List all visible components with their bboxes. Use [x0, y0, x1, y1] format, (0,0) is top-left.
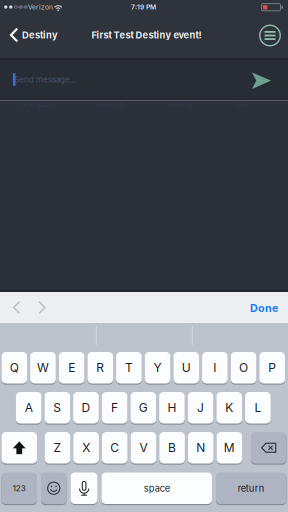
staticText: U [182, 361, 191, 375]
staticText: return [238, 483, 265, 494]
button[interactable]: Q [1, 352, 27, 383]
button[interactable]: A [16, 392, 41, 423]
button[interactable]: J [188, 392, 213, 423]
button[interactable]: return [216, 472, 286, 504]
staticText: Q [10, 361, 19, 375]
button[interactable]: W [30, 352, 56, 383]
button[interactable]: R [87, 352, 113, 383]
staticText: M [224, 441, 235, 455]
button[interactable]: Delete [251, 432, 286, 463]
staticText: 7:19 PM [131, 3, 156, 11]
button[interactable]: B [159, 432, 185, 463]
button[interactable]: H [159, 392, 185, 423]
staticText: Y [154, 361, 162, 375]
button[interactable]: 123 [1, 472, 37, 504]
staticText: W [37, 361, 49, 375]
button[interactable]: S [44, 392, 70, 423]
staticText: First Test Destiny event! [91, 29, 201, 40]
button[interactable]: C [102, 432, 127, 463]
staticText: C [110, 441, 119, 455]
button[interactable]: M [216, 432, 242, 463]
button[interactable]: Back [10, 20, 58, 50]
button[interactable]: N [188, 432, 213, 463]
staticText: I [213, 361, 216, 375]
button[interactable]: G [130, 392, 156, 423]
staticText: PS4 [237, 101, 249, 108]
button[interactable]: Dictate [70, 472, 97, 504]
button[interactable]: Emoji [41, 472, 66, 504]
staticText: 123 [13, 483, 26, 493]
staticText: Send message... [14, 75, 76, 84]
button[interactable]: Y [145, 352, 170, 383]
staticText: D [81, 401, 90, 415]
button[interactable]: Send [251, 72, 271, 90]
button[interactable]: K [216, 392, 242, 423]
staticText: Done [250, 302, 278, 314]
button[interactable]: space [101, 472, 212, 504]
staticText: N [196, 441, 205, 455]
staticText: V [139, 441, 147, 455]
button[interactable]: L [245, 392, 271, 423]
button[interactable]: Menu [258, 23, 282, 47]
staticText: B [168, 441, 176, 455]
button[interactable]: D [73, 392, 99, 423]
button[interactable]: Previous [13, 301, 21, 314]
staticText: L [254, 401, 261, 415]
staticText: S [53, 401, 61, 415]
button[interactable]: F [102, 392, 127, 423]
staticText: P [268, 361, 276, 375]
button[interactable]: U [173, 352, 199, 383]
button[interactable]: Z [45, 432, 70, 463]
staticText: R [96, 361, 104, 375]
staticText: E [68, 361, 75, 375]
staticText: space [144, 483, 170, 494]
staticText: O [239, 361, 248, 375]
button[interactable]: V [131, 432, 156, 463]
staticText: H [167, 401, 176, 415]
staticText: X [82, 441, 90, 455]
staticText: F [111, 401, 118, 415]
staticText: Z [53, 441, 61, 455]
button[interactable]: Send message [0, 60, 230, 100]
button[interactable]: T [116, 352, 142, 383]
staticText: Verizon [28, 3, 53, 11]
button[interactable]: Next [37, 301, 45, 314]
staticText: J [197, 401, 204, 415]
button[interactable]: P [259, 352, 285, 383]
button[interactable]: O [231, 352, 256, 383]
staticText: A [25, 401, 33, 415]
staticText: K [225, 401, 233, 415]
staticText: Destiny [22, 29, 58, 40]
staticText: T [125, 361, 133, 375]
button[interactable]: I [202, 352, 228, 383]
button[interactable]: X [73, 432, 99, 463]
button[interactable]: Shift [1, 432, 37, 463]
button[interactable]: E [59, 352, 84, 383]
staticText: G [139, 401, 148, 415]
button[interactable]: Done [244, 298, 284, 318]
